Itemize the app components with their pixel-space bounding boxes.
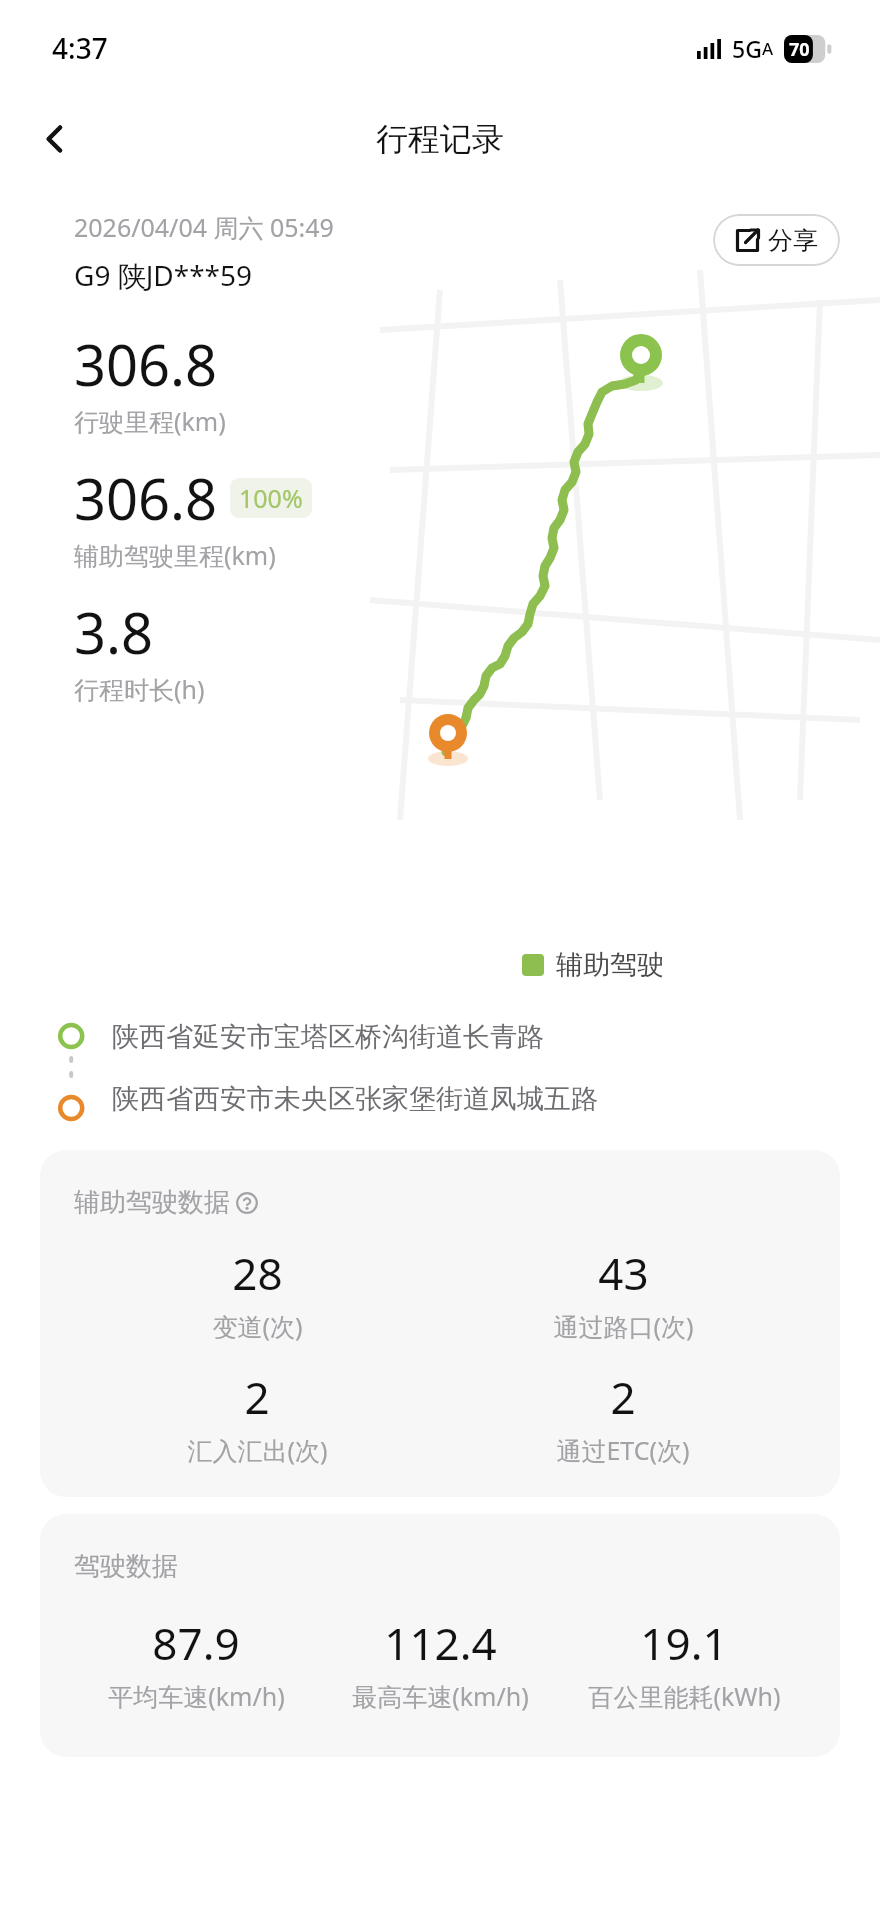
staticText: 5G xyxy=(732,33,762,64)
staticText: 辅助驾驶 xyxy=(556,948,664,982)
staticText: 最高车速(km/h) xyxy=(352,1679,529,1713)
staticText: 行驶里程(km) xyxy=(74,404,226,438)
button[interactable]: Back xyxy=(26,110,84,168)
staticText: 行程记录 xyxy=(376,119,504,159)
button[interactable]: 分享 xyxy=(713,214,840,266)
staticText: 2 xyxy=(610,1367,636,1427)
staticText: G9 陕JD***59 xyxy=(74,256,253,294)
staticText: 变道(次) xyxy=(212,1309,303,1343)
staticText: 43 xyxy=(598,1243,649,1303)
staticText: A xyxy=(762,37,774,60)
button[interactable]: 驾驶数据 xyxy=(40,1514,840,1757)
staticText: 4:37 xyxy=(52,29,108,67)
staticText: 平均车速(km/h) xyxy=(108,1679,285,1713)
staticText: 19.1 xyxy=(640,1613,728,1673)
staticText: 百公里能耗(kWh) xyxy=(588,1679,781,1713)
staticText: 3.8 xyxy=(74,594,154,670)
staticText: 驾驶数据 xyxy=(74,1550,178,1583)
staticText: 辅助驾驶里程(km) xyxy=(74,538,276,572)
button[interactable]: 辅助驾驶数据 xyxy=(40,1150,840,1497)
staticText: 306.8 xyxy=(74,326,218,402)
staticText: 2026/04/04 周六 05:49 xyxy=(74,210,334,244)
staticText: 陕西省西安市未央区张家堡街道凤城五路 xyxy=(112,1082,598,1116)
staticText: 87.9 xyxy=(152,1613,240,1673)
staticText: 分享 xyxy=(768,225,818,256)
staticText: 100% xyxy=(239,481,303,515)
staticText: 行程时长(h) xyxy=(74,672,205,706)
staticText: 306.8 xyxy=(74,460,218,536)
staticText: 28 xyxy=(232,1243,283,1303)
staticText: 70 xyxy=(789,37,810,62)
staticText: 通过ETC(次) xyxy=(556,1433,690,1467)
staticText: 辅助驾驶数据 xyxy=(74,1186,230,1219)
staticText: 通过路口(次) xyxy=(553,1309,694,1343)
staticText: 陕西省延安市宝塔区桥沟街道长青路 xyxy=(112,1020,544,1054)
staticText: 2 xyxy=(244,1367,270,1427)
staticText: 112.4 xyxy=(384,1613,497,1673)
staticText: 汇入汇出(次) xyxy=(187,1433,328,1467)
